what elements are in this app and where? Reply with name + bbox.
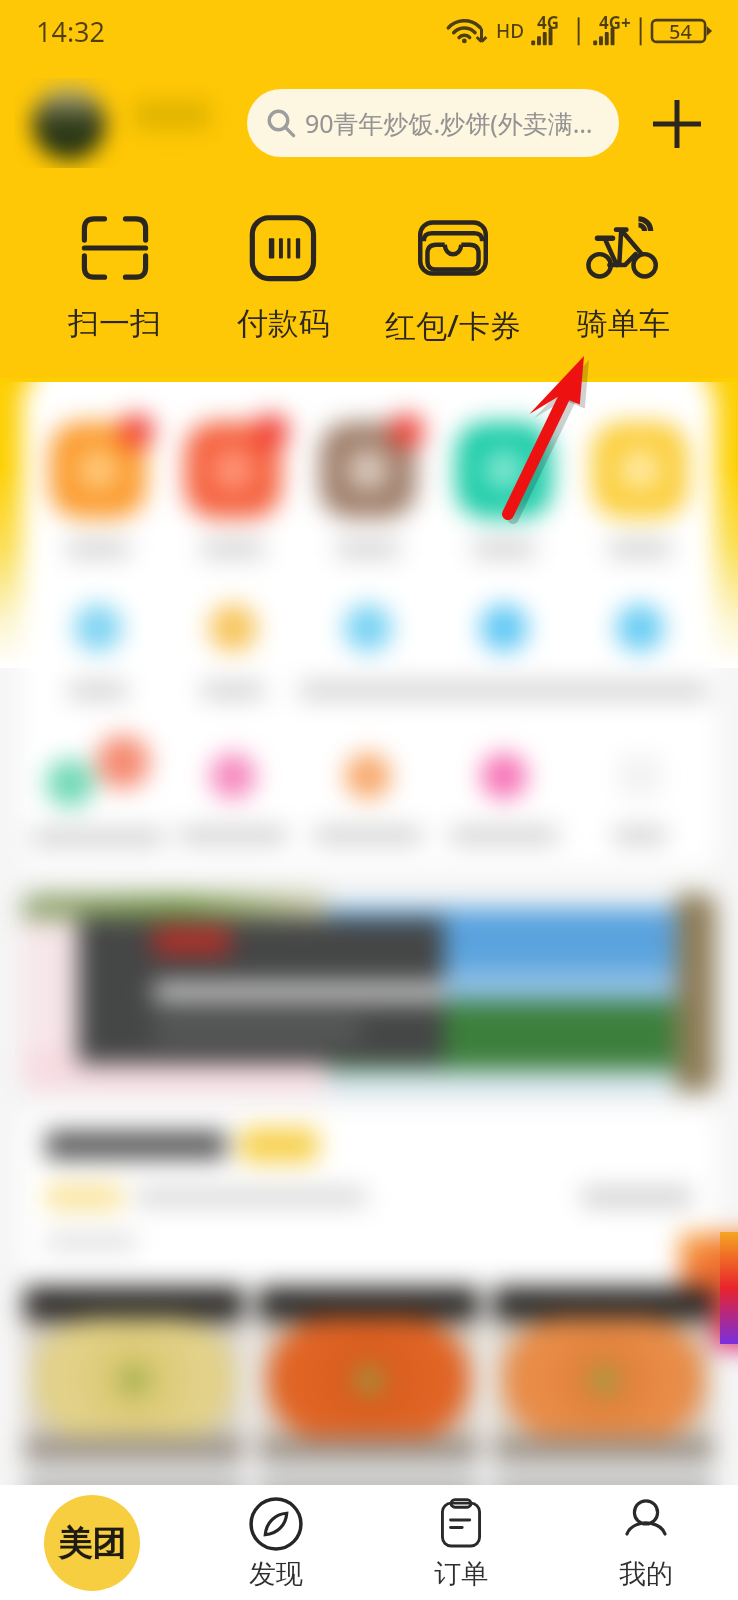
button[interactable]: Ad: [720, 1232, 738, 1344]
button[interactable]: 扫一扫: [30, 212, 199, 343]
staticText: 发现: [249, 1557, 303, 1591]
staticText: 骑单车: [577, 304, 670, 343]
button[interactable]: 订单: [368, 1485, 553, 1600]
staticText: 付款码: [237, 304, 330, 343]
button[interactable]: 骑单车: [538, 212, 708, 343]
button[interactable]: 我的: [553, 1485, 738, 1600]
button[interactable]: 美团首页: [0, 1485, 184, 1600]
staticText: 54: [669, 18, 692, 45]
staticText: 我的: [619, 1557, 673, 1591]
button[interactable]: 90青年炒饭.炒饼(外卖满…: [247, 89, 619, 157]
staticText: 订单: [434, 1557, 488, 1591]
staticText: 90青年炒饭.炒饼(外卖满…: [305, 106, 593, 140]
staticText: 4G: [537, 11, 560, 34]
staticText: 14:32: [36, 13, 106, 50]
button[interactable]: 发现: [184, 1485, 368, 1600]
staticText: HD: [496, 18, 525, 44]
button[interactable]: 付款码: [199, 212, 368, 343]
staticText: 4G+: [599, 11, 631, 34]
button[interactable]: 红包/卡券: [368, 212, 538, 346]
staticText: 美团: [58, 1522, 126, 1565]
staticText: 红包/卡券: [385, 304, 521, 346]
button[interactable]: 添加: [640, 89, 714, 159]
staticText: 扫一扫: [68, 304, 161, 343]
